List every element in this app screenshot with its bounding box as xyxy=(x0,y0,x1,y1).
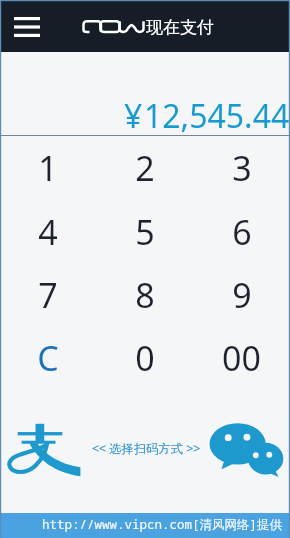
staticText: 现在支付 xyxy=(146,17,214,38)
button[interactable]: WeChat Pay xyxy=(208,417,288,479)
staticText: 0 xyxy=(135,335,155,381)
staticText: 5 xyxy=(135,209,155,255)
button[interactable]: << 选择扫码方式 >> xyxy=(92,440,201,457)
button[interactable]: C xyxy=(0,326,96,389)
staticText: 00 xyxy=(222,335,261,381)
button[interactable]: 7 xyxy=(0,263,96,326)
staticText: 4 xyxy=(38,209,58,255)
button[interactable]: 0 xyxy=(96,326,193,389)
button[interactable]: 1 xyxy=(0,136,96,200)
button[interactable]: 4 xyxy=(0,200,96,263)
button[interactable]: 5 xyxy=(96,200,193,263)
staticText: http://www.vipcn.com[清风网络]提供 xyxy=(42,516,283,533)
button[interactable]: 8 xyxy=(96,263,193,326)
staticText: 7 xyxy=(38,272,58,318)
button[interactable]: 6 xyxy=(193,200,290,263)
button[interactable]: 9 xyxy=(193,263,290,326)
staticText: 3 xyxy=(232,145,252,191)
staticText: C xyxy=(37,335,59,381)
button[interactable]: 3 xyxy=(193,136,290,200)
button[interactable]: Menu xyxy=(1,1,53,53)
button[interactable]: 2 xyxy=(96,136,193,200)
staticText: 9 xyxy=(232,272,252,318)
button[interactable]: 00 xyxy=(193,326,290,389)
staticText: 2 xyxy=(135,145,155,191)
staticText: 1 xyxy=(38,145,58,191)
staticText: 6 xyxy=(232,209,252,255)
staticText: 8 xyxy=(135,272,155,318)
staticText: ¥ xyxy=(124,94,143,138)
button[interactable]: Alipay xyxy=(3,419,83,481)
staticText: 12,545.44 xyxy=(144,94,290,138)
